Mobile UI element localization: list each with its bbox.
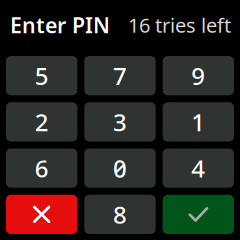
staticText: 9 [191, 60, 205, 92]
staticText: Enter PIN [10, 11, 110, 39]
button[interactable]: 7 [84, 56, 156, 95]
button[interactable]: 4 [163, 148, 234, 188]
button[interactable]: 3 [84, 102, 156, 141]
button[interactable]: Cancel [6, 195, 77, 234]
button[interactable]: 5 [6, 56, 77, 95]
button[interactable]: 2 [6, 102, 77, 141]
staticText: 0︀ [113, 152, 127, 184]
staticText: 16 tries left [128, 12, 231, 38]
staticText: 5 [35, 60, 49, 92]
button[interactable]: 9 [163, 56, 234, 95]
staticText: 7 [113, 60, 127, 92]
staticText: 8 [113, 198, 127, 230]
staticText: 2 [35, 106, 49, 138]
staticText: 1 [191, 106, 205, 138]
staticText: 6 [35, 152, 49, 184]
staticText: 3 [113, 106, 127, 138]
button[interactable]: 8 [84, 195, 156, 234]
button[interactable]: 6 [6, 148, 77, 188]
staticText: 4 [191, 152, 205, 184]
button[interactable]: Confirm [163, 195, 234, 234]
button[interactable]: 1 [163, 102, 234, 141]
button[interactable]: 0︀ [84, 148, 156, 188]
